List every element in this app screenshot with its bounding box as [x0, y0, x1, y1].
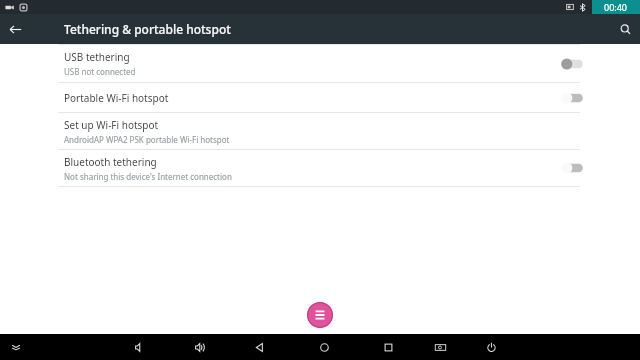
button[interactable]: Volume up [188, 336, 210, 358]
staticText: Set up Wi-Fi hotspot [64, 118, 159, 132]
button[interactable]: Volume down [128, 336, 150, 358]
button[interactable]: Toggle [560, 91, 586, 105]
button[interactable]: Recent apps [377, 336, 399, 358]
staticText: 00:40 [604, 1, 628, 13]
button[interactable]: Toggle [560, 57, 586, 71]
button[interactable]: Search [610, 14, 640, 44]
button[interactable]: Hide navigation [6, 337, 26, 357]
button[interactable]: Back [0, 14, 30, 44]
button[interactable]: Back [248, 336, 270, 358]
button[interactable]: Power [480, 336, 502, 358]
staticText: Not sharing this device's Internet conne… [64, 171, 232, 182]
button[interactable]: Set up Wi-Fi hotspot [0, 113, 640, 149]
staticText: AndroidAP WPA2 PSK portable Wi-Fi hotspo… [64, 134, 230, 145]
button[interactable]: Screenshot [429, 336, 451, 358]
staticText: Portable Wi-Fi hotspot [64, 91, 169, 105]
staticText: Bluetooth tethering [64, 155, 157, 169]
button[interactable]: Portable Wi-Fi hotspot [0, 83, 640, 112]
button[interactable]: Bluetooth tethering [0, 150, 640, 186]
button[interactable]: USB tethering [0, 45, 640, 82]
staticText: Tethering & portable hotspot [64, 21, 231, 37]
staticText: USB tethering [64, 50, 130, 64]
button[interactable]: Toggle [560, 161, 586, 175]
staticText: USB not connected [64, 66, 136, 77]
button[interactable]: Home [313, 336, 335, 358]
button[interactable]: Menu [307, 302, 333, 328]
